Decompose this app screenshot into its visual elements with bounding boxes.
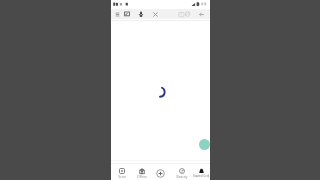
staticText: Scan [118,174,126,179]
button[interactable]: Menu [113,9,122,19]
button[interactable]: Beauty [172,165,192,180]
staticText: Saved Crd [193,173,209,178]
button[interactable]: Camera [112,165,132,180]
staticText: Beauty [176,174,188,179]
staticText: Offers [137,174,147,179]
button[interactable]: Back [197,9,206,19]
button[interactable]: Assistant [199,139,210,150]
button[interactable]: Store [132,165,152,180]
button[interactable]: Tabs [178,9,187,19]
button[interactable]: Image search [122,9,131,19]
button[interactable]: Close [151,9,160,19]
button[interactable]: Voice search [136,9,145,19]
button[interactable]: Create [150,165,170,180]
button[interactable]: Saved Cards [191,165,211,180]
